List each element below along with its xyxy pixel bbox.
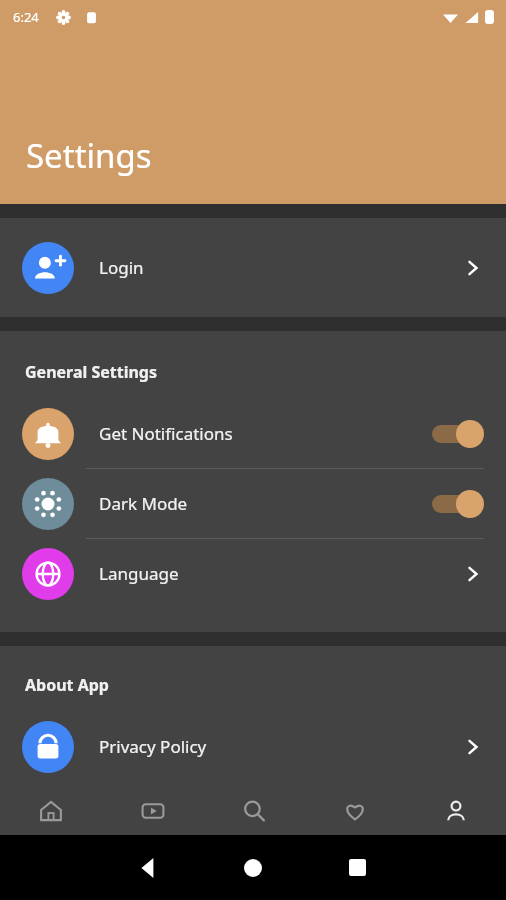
staticText: Privacy Policy xyxy=(99,735,207,758)
other: Open xyxy=(462,736,484,758)
button[interactable]: Get Notifications xyxy=(0,399,506,468)
button[interactable]: Privacy Policy xyxy=(0,712,506,781)
staticText: Settings xyxy=(26,133,152,178)
staticText: Login xyxy=(99,256,144,279)
staticText: Language xyxy=(99,562,179,585)
staticText: Get Notifications xyxy=(99,422,233,445)
staticText: 6:24 xyxy=(13,8,39,26)
other: Open xyxy=(462,257,484,279)
staticText: General Settings xyxy=(25,361,158,383)
button[interactable]: Search xyxy=(203,787,304,835)
button[interactable]: Profile xyxy=(405,787,506,835)
button[interactable]: Language xyxy=(0,539,506,608)
staticText: Dark Mode xyxy=(99,492,188,515)
button[interactable]: Videos xyxy=(102,787,203,835)
other: Open xyxy=(462,563,484,585)
button[interactable]: Dark Mode xyxy=(0,469,506,538)
button[interactable]: Home xyxy=(0,787,102,835)
staticText: About App xyxy=(25,674,109,696)
button[interactable]: Favorites xyxy=(304,787,405,835)
button[interactable]: Login xyxy=(0,218,506,317)
